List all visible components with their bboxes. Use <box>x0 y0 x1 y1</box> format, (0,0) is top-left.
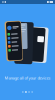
staticText: Manage all of your devices <box>4 75 50 81</box>
